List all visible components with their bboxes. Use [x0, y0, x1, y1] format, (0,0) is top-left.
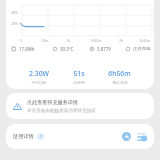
staticText: 6h56m — [108, 69, 131, 78]
button[interactable]: History — [136, 131, 147, 142]
staticText: ? — [40, 134, 42, 140]
staticText: 30m — [36, 38, 54, 43]
staticText: 点此查看快充服务详情 — [27, 99, 78, 105]
staticText: 使用详情 — [13, 133, 34, 140]
staticText: 已使用 — [73, 80, 85, 85]
staticText: 51s — [73, 69, 85, 78]
staticText: 2h30m — [136, 38, 154, 43]
staticText: 2h — [112, 38, 130, 43]
staticText: 40% — [11, 10, 19, 15]
staticText: 20% — [11, 21, 19, 26]
button[interactable]: Statistics — [121, 131, 132, 142]
staticText: 本次充电未能触发高功率快充协议 — [27, 108, 96, 114]
staticText: 17.8Wh — [19, 46, 35, 52]
staticText: 2.30W — [29, 69, 49, 78]
button[interactable]: Help — [37, 133, 44, 140]
staticText: 预计充满 — [112, 80, 128, 85]
staticText: 30.3°C — [60, 46, 74, 52]
staticText: 3.877V — [97, 46, 111, 52]
staticText: 0 — [12, 38, 30, 43]
staticText: 正在充电 — [133, 46, 151, 52]
staticText: 平均功耗 — [31, 80, 47, 85]
staticText: 1h30m — [87, 38, 105, 43]
staticText: 1h — [59, 38, 77, 43]
button[interactable]: 点此查看快充服务详情 — [6, 93, 154, 119]
